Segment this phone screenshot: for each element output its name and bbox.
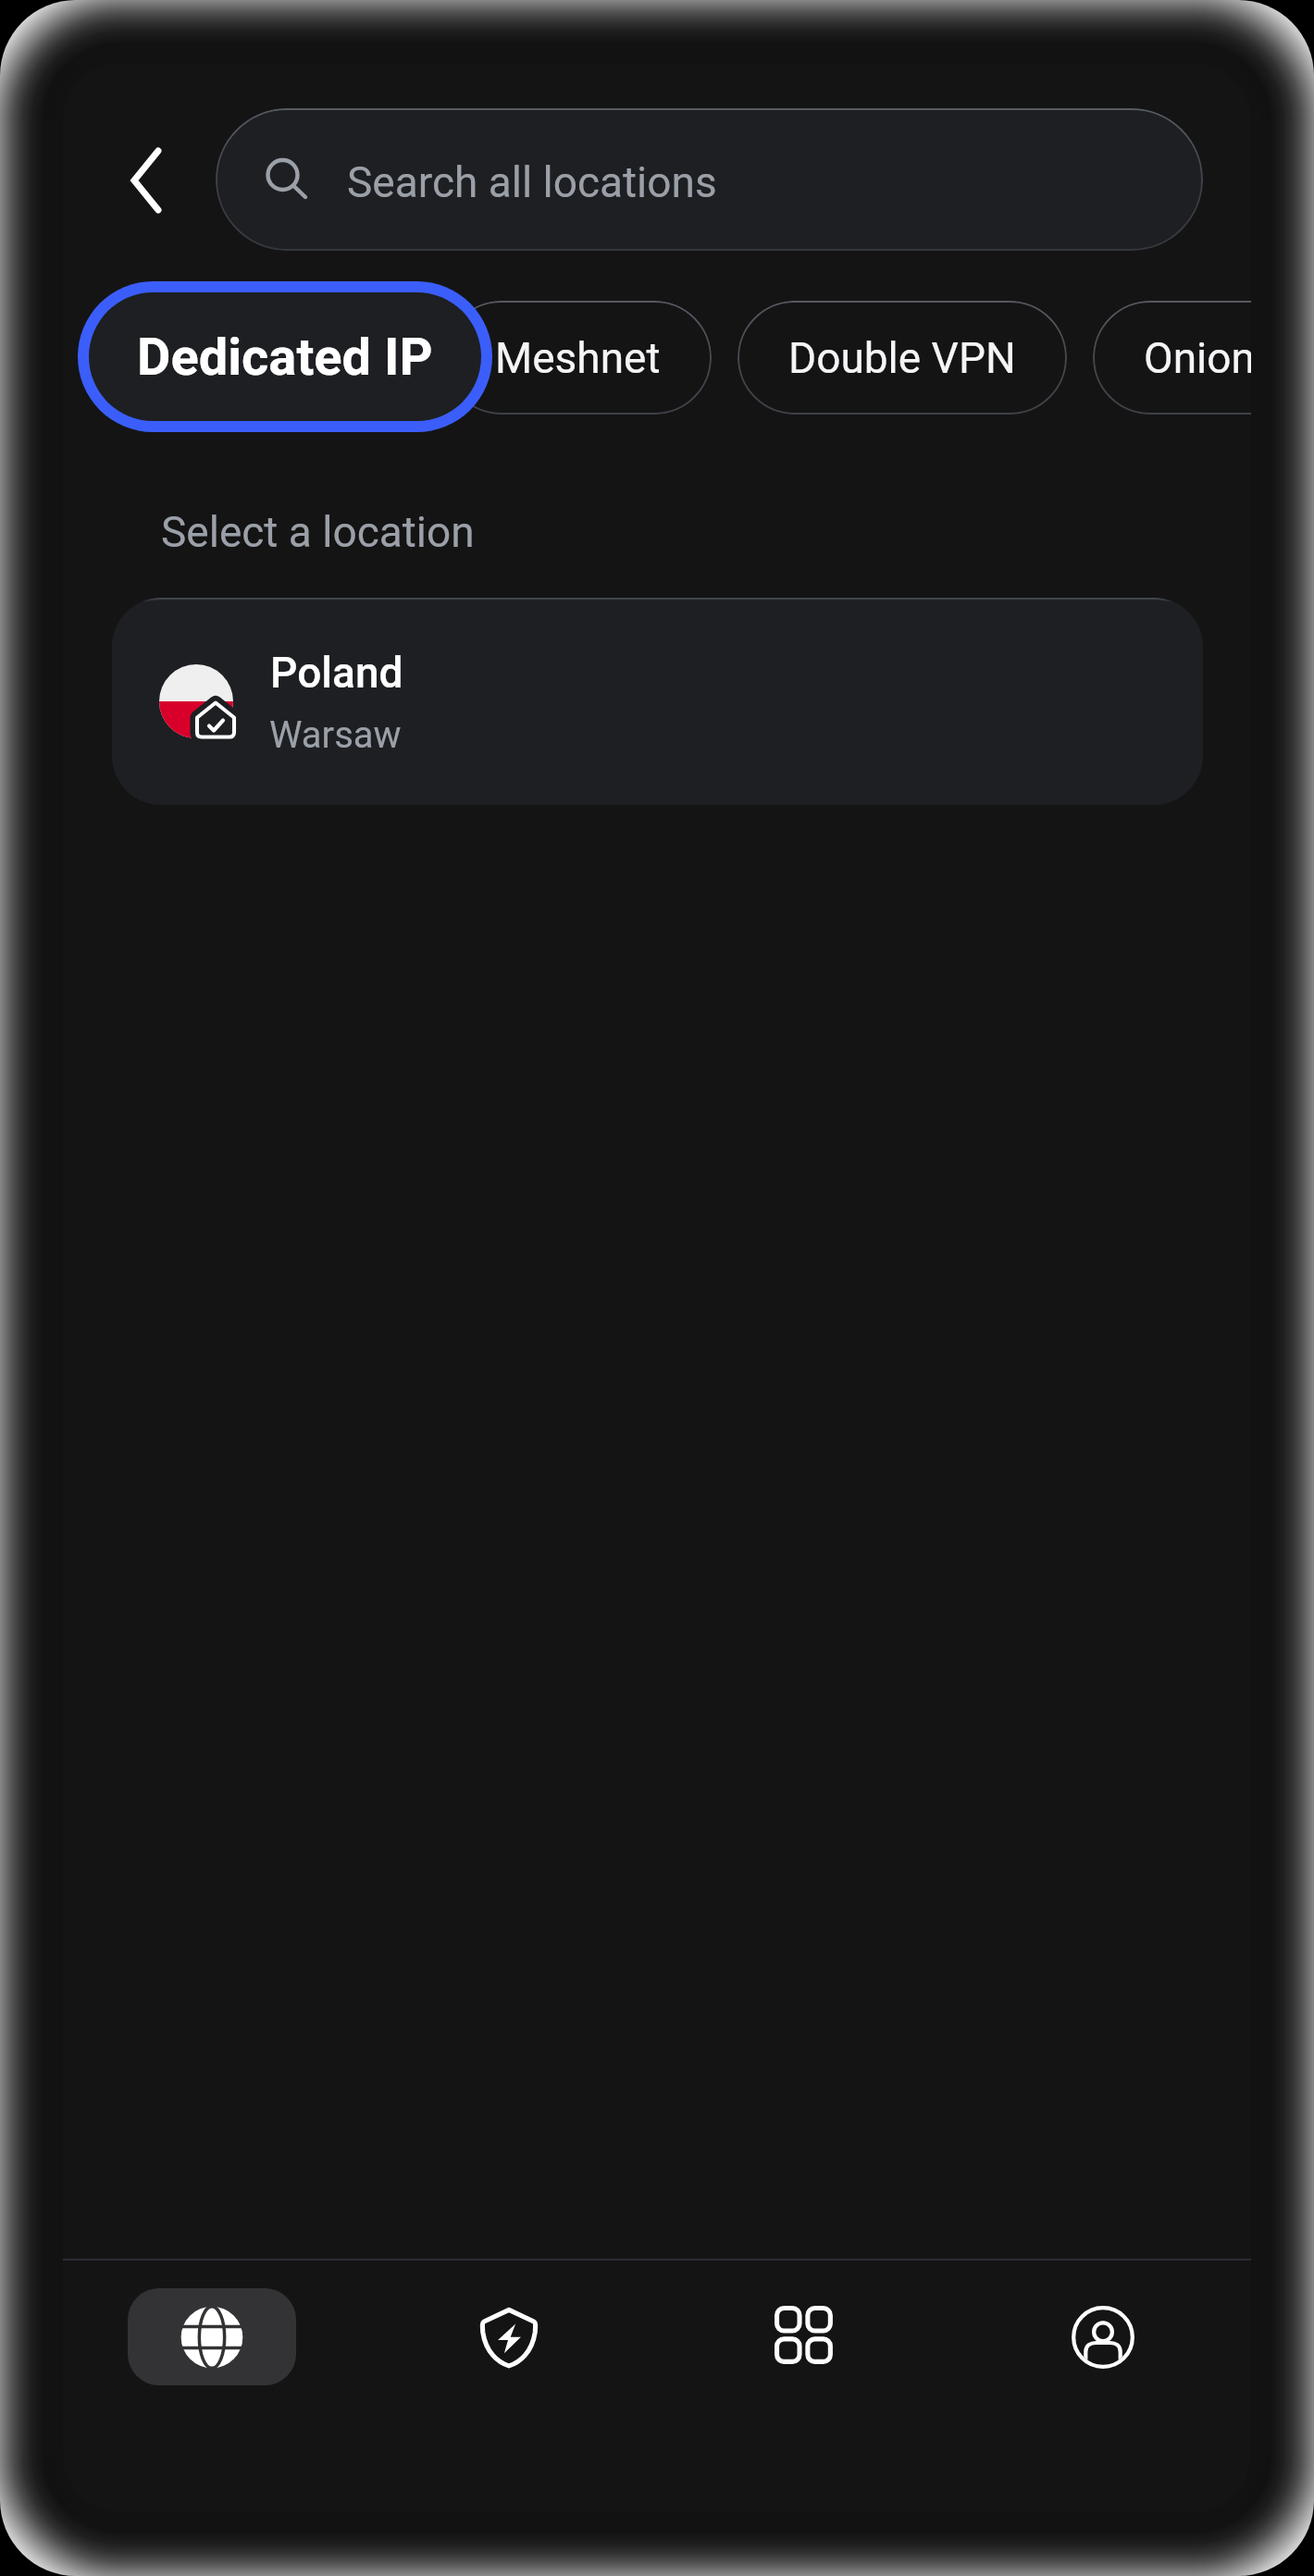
- staticText: Warsaw: [269, 713, 402, 757]
- staticText: Meshnet: [495, 333, 661, 383]
- button[interactable]: Onion Over VPN: [1093, 301, 1251, 415]
- button[interactable]: Back: [91, 125, 202, 236]
- staticText: Dedicated IP: [137, 327, 433, 388]
- staticText: Poland: [270, 648, 403, 698]
- button[interactable]: Threat protection: [360, 2260, 657, 2512]
- button[interactable]: Poland: [112, 598, 1203, 805]
- staticText: Onion Over VPN: [1144, 333, 1251, 383]
- button[interactable]: Double VPN: [738, 301, 1067, 415]
- button[interactable]: Locations: [63, 2260, 360, 2512]
- staticText: Search all locations: [347, 157, 717, 207]
- button[interactable]: Account: [954, 2260, 1251, 2512]
- button[interactable]: Dedicated IP: [89, 292, 481, 421]
- button[interactable]: Meshnet: [444, 301, 712, 415]
- staticText: Double VPN: [788, 333, 1016, 383]
- button[interactable]: Apps: [657, 2260, 954, 2512]
- staticText: Select a location: [161, 507, 475, 557]
- button[interactable]: Search all locations: [216, 108, 1203, 251]
